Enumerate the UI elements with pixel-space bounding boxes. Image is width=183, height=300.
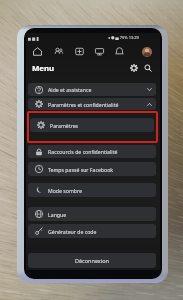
staticText: Temps passé sur Facebook	[48, 166, 114, 173]
staticText: Menu	[32, 63, 55, 74]
button[interactable]: Notifications	[109, 43, 129, 60]
staticText: Paramètres et confidentialité	[48, 101, 119, 108]
button[interactable]: Déconnexion	[28, 253, 156, 268]
button[interactable]: Friends	[48, 43, 68, 60]
button[interactable]: Marketplace	[89, 43, 109, 60]
staticText: Paramètres	[50, 122, 79, 129]
staticText: Langue	[48, 211, 67, 218]
staticText: Mode sombre	[48, 187, 82, 194]
button[interactable]: Video	[69, 43, 89, 60]
button[interactable]: Temps passé sur Facebook	[28, 162, 156, 176]
button[interactable]: Aide et assistance	[28, 83, 156, 96]
staticText: Générateur de code	[48, 228, 97, 235]
button[interactable]: Langue	[28, 207, 156, 221]
staticText: Déconnexion	[75, 257, 109, 264]
button[interactable]: Profile	[138, 43, 156, 60]
button[interactable]: Search	[142, 62, 154, 74]
button[interactable]: Settings	[128, 62, 140, 74]
button[interactable]: Paramètres et confidentialité	[28, 98, 156, 110]
button[interactable]: Paramètres	[30, 118, 154, 132]
button[interactable]: Raccourcis de confidentialité	[28, 145, 156, 158]
button[interactable]: Mode sombre	[28, 183, 156, 197]
staticText: Raccourcis de confidentialité	[48, 148, 118, 155]
button[interactable]: Home	[27, 43, 47, 60]
staticText: ◂ ● ▄ 75% 13:29	[108, 35, 139, 40]
staticText: Aide et assistance	[48, 86, 92, 93]
button[interactable]: Générateur de code	[28, 224, 156, 238]
